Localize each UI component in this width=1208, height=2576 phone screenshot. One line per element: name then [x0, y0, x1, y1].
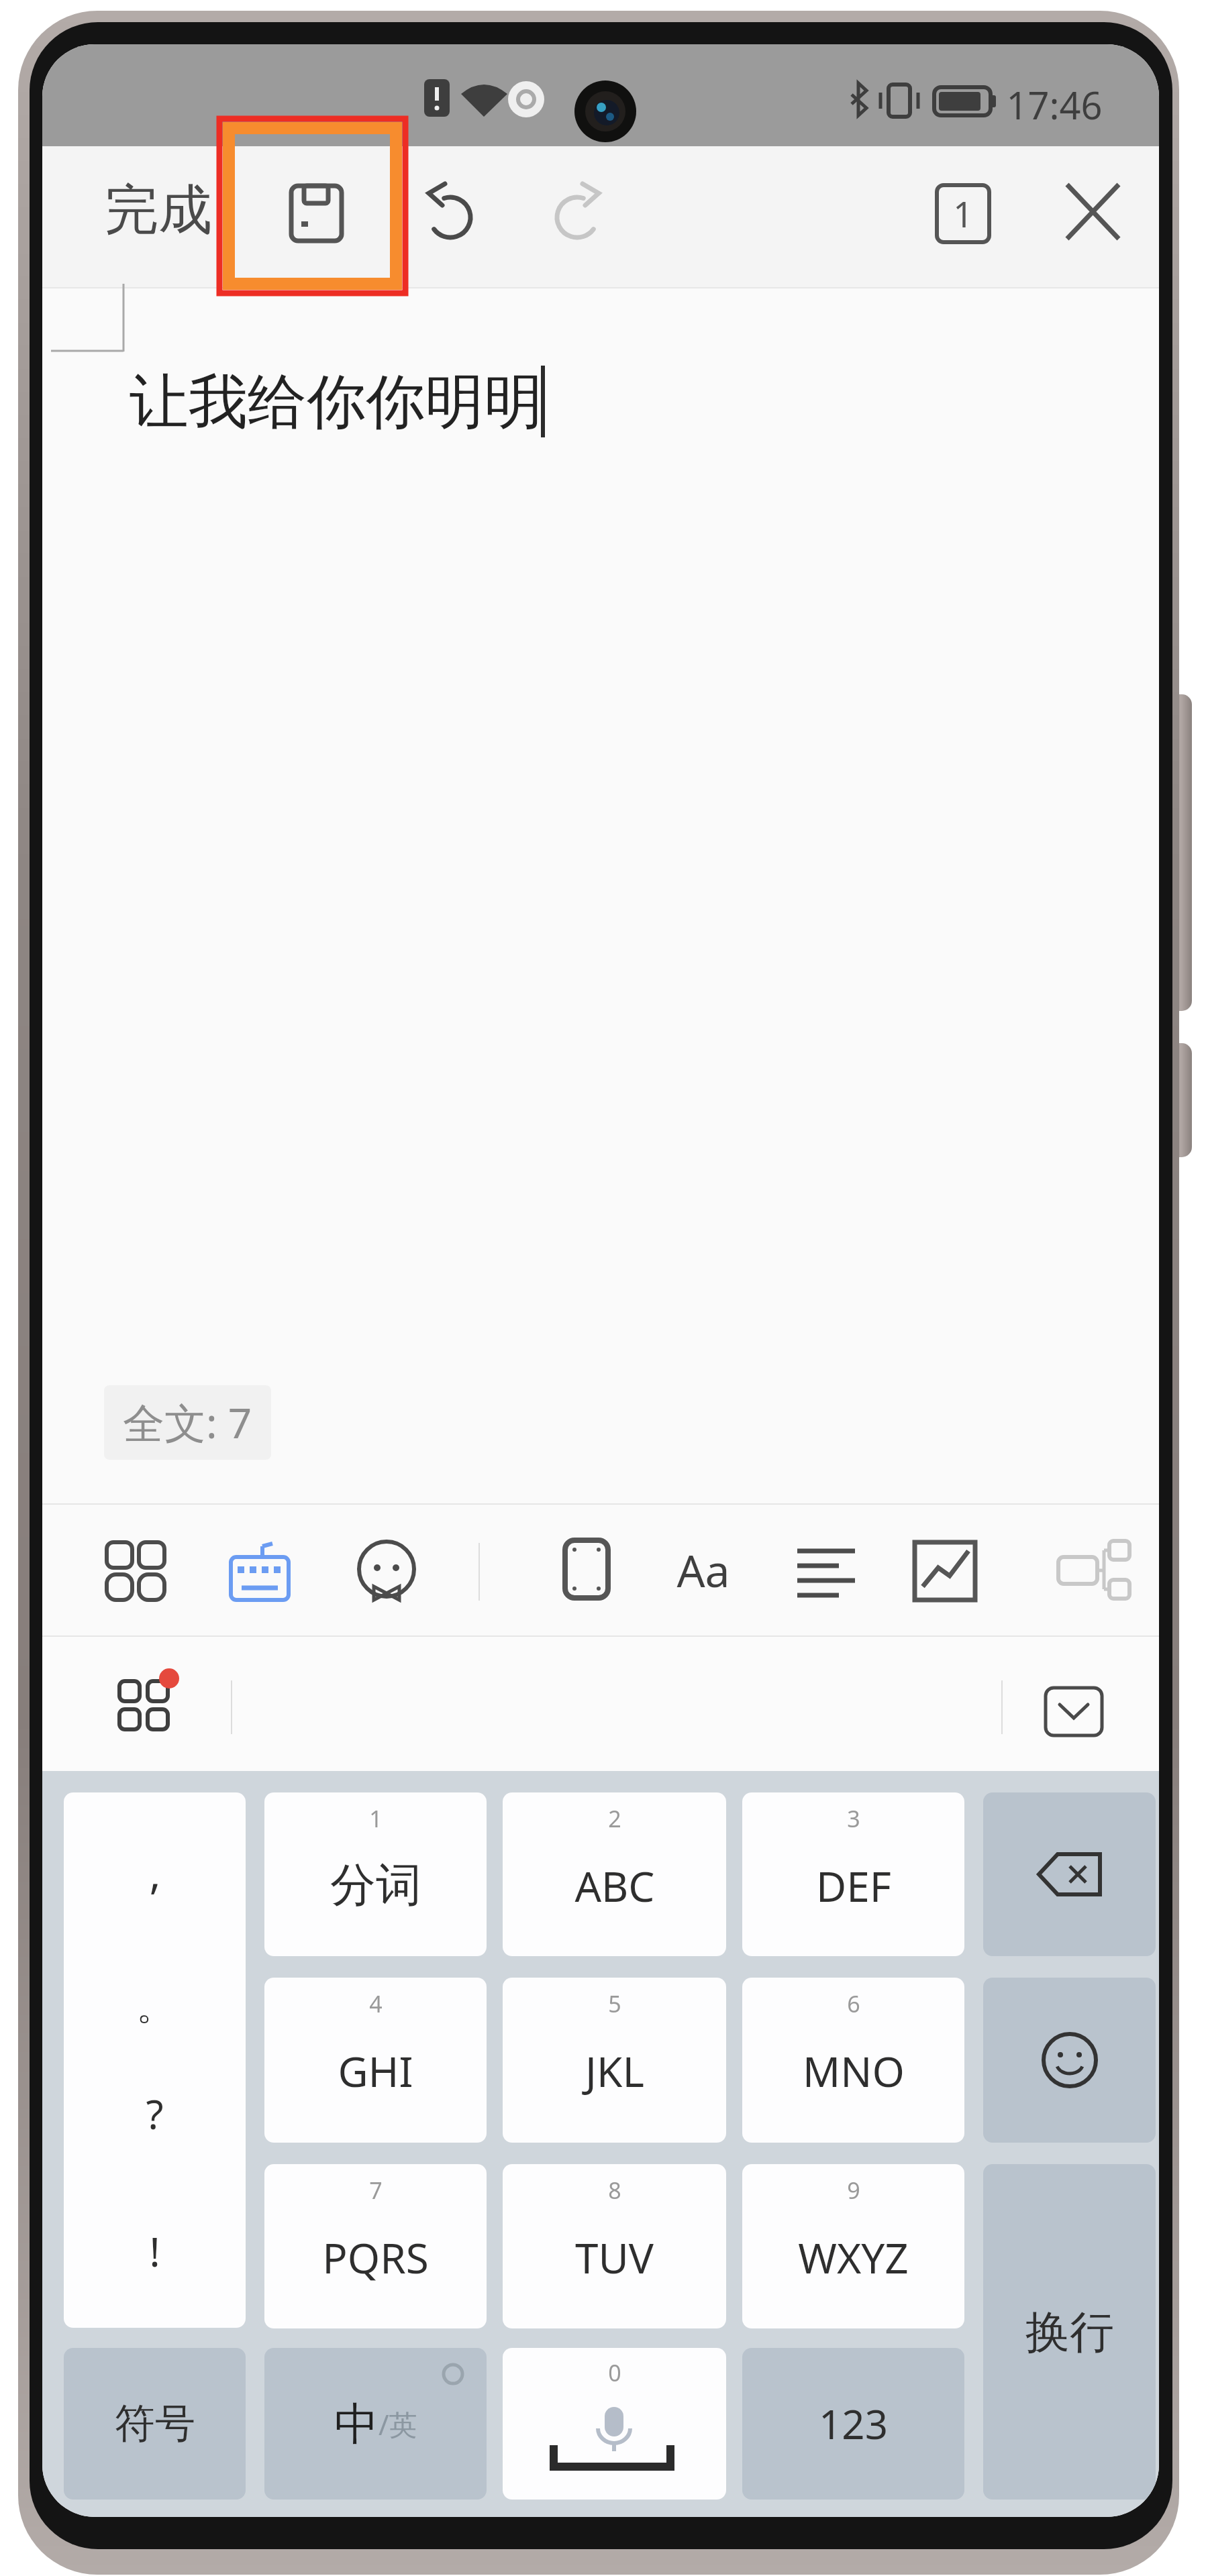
button[interactable] — [503, 2348, 726, 2500]
button[interactable] — [1057, 1541, 1131, 1603]
staticText: 全文: 7 — [123, 1394, 252, 1451]
staticText: 17:46 — [1006, 79, 1103, 125]
staticText: PQRS — [322, 2229, 429, 2286]
staticText: , — [149, 1843, 161, 1902]
button[interactable] — [742, 1978, 964, 2143]
button[interactable] — [556, 1539, 617, 1601]
staticText: 7 — [369, 2175, 383, 2204]
staticText: WXYZ — [798, 2229, 909, 2286]
button[interactable] — [742, 2164, 964, 2328]
button[interactable]: 中 — [264, 2348, 487, 2500]
button[interactable] — [915, 1541, 976, 1603]
staticText: ? — [146, 2086, 164, 2141]
button[interactable] — [64, 2348, 246, 2500]
staticText: ABC — [574, 1858, 655, 1914]
button[interactable] — [64, 1792, 246, 2328]
staticText: DEF — [816, 1858, 891, 1914]
button[interactable] — [105, 1541, 167, 1603]
button[interactable] — [264, 1978, 487, 2143]
staticText: 中 — [334, 2396, 379, 2452]
staticText: ! — [149, 2224, 160, 2279]
button[interactable]: Aa — [653, 1539, 754, 1601]
button[interactable] — [264, 2164, 487, 2328]
staticText: 0 — [608, 2357, 621, 2387]
staticText: 6 — [847, 1988, 860, 2018]
button[interactable] — [1044, 1686, 1104, 1737]
button[interactable] — [742, 1792, 964, 1956]
button[interactable]: 1 — [935, 183, 991, 244]
button[interactable]: 完成 — [76, 172, 240, 249]
button[interactable] — [106, 1668, 180, 1741]
button[interactable] — [503, 1792, 726, 1956]
button[interactable] — [274, 172, 361, 259]
staticText: 完成 — [105, 176, 212, 244]
staticText: MNO — [803, 2043, 905, 2099]
staticText: TUV — [575, 2229, 654, 2286]
staticText: 分词 — [330, 1857, 421, 1915]
staticText: 2 — [608, 1803, 621, 1833]
button[interactable] — [264, 1792, 487, 1956]
staticText: 4 — [369, 1988, 383, 2018]
button[interactable] — [356, 1541, 418, 1603]
staticText: 1 — [369, 1803, 383, 1833]
button[interactable] — [983, 2164, 1156, 2500]
staticText: JKL — [585, 2043, 644, 2099]
button[interactable] — [425, 182, 474, 245]
button[interactable] — [231, 1541, 293, 1603]
staticText: 让我给你你明明 — [130, 365, 543, 439]
staticText: GHI — [338, 2043, 413, 2099]
staticText: 8 — [608, 2175, 621, 2204]
staticText: Aa — [676, 1540, 730, 1600]
button[interactable] — [503, 1978, 726, 2143]
button[interactable] — [983, 1978, 1156, 2143]
staticText: 9 — [847, 2175, 860, 2204]
button[interactable] — [983, 1792, 1156, 1956]
button[interactable] — [742, 2348, 964, 2500]
staticText: 。 — [136, 1983, 174, 2031]
staticText: 换行 — [1025, 2304, 1114, 2360]
button[interactable] — [1064, 182, 1121, 241]
button[interactable] — [503, 2164, 726, 2328]
button[interactable] — [797, 1541, 859, 1603]
staticText: /英 — [379, 2405, 417, 2443]
staticText: 符号 — [115, 2398, 195, 2449]
staticText: 3 — [847, 1803, 860, 1833]
staticText: 1 — [953, 190, 973, 237]
staticText: 123 — [819, 2396, 888, 2451]
button[interactable] — [554, 182, 603, 245]
staticText: 5 — [608, 1988, 621, 2018]
